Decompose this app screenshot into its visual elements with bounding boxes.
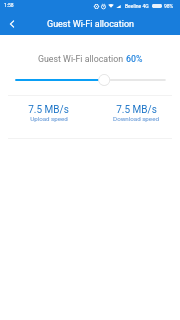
- staticText: Upload speed: [30, 115, 68, 122]
- staticText: 60%: [126, 54, 143, 64]
- staticText: Beeline 4G: [125, 3, 149, 9]
- staticText: Download speed: [113, 115, 159, 122]
- staticText: 98%: [164, 3, 174, 9]
- staticText: 1:58: [4, 2, 14, 8]
- button[interactable]: 7.5 MB/s: [92, 100, 180, 134]
- staticText: 7.5 MB/s: [28, 104, 69, 116]
- button[interactable]: 7.5 MB/s: [5, 100, 92, 134]
- staticText: 7.5 MB/s: [116, 104, 157, 116]
- staticText: Guest Wi-Fi allocation: [38, 54, 126, 64]
- button[interactable]: Back: [1, 13, 23, 35]
- staticText: Guest Wi-Fi allocation: [47, 19, 134, 30]
